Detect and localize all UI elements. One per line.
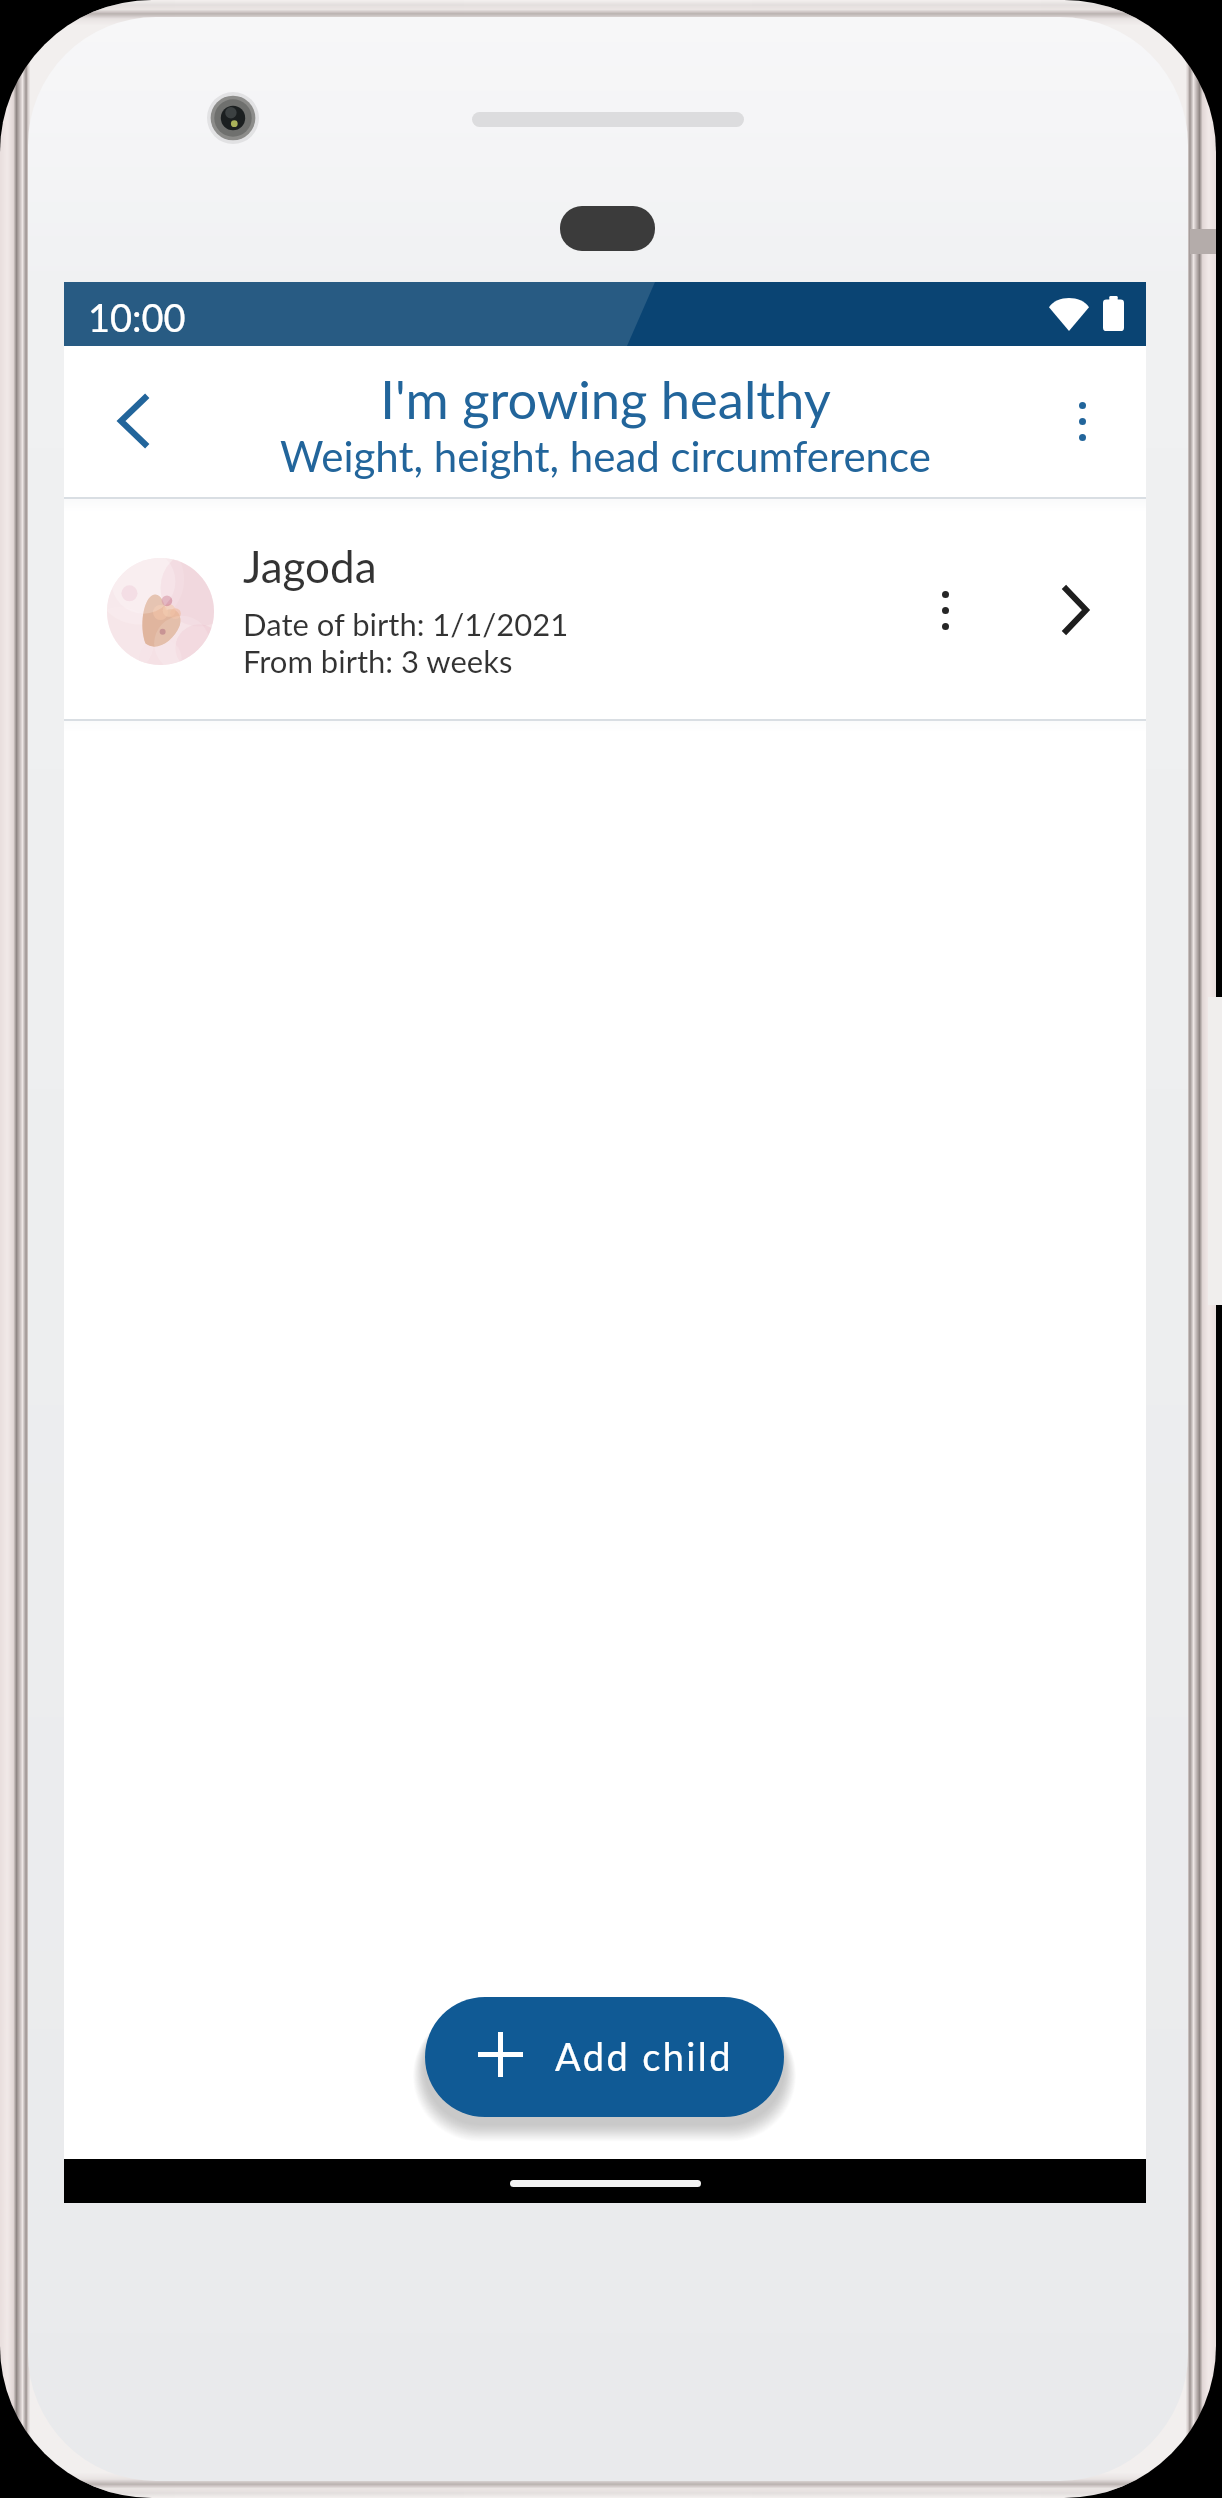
staticText: 10:00 [88, 294, 186, 340]
staticText: From birth: 3 weeks [243, 642, 513, 679]
button[interactable]: Jagoda [64, 499, 1146, 720]
button[interactable]: Open Jagoda [1020, 554, 1132, 666]
button[interactable]: More options [1027, 366, 1137, 476]
button[interactable]: Back [78, 366, 188, 476]
staticText: Jagoda [243, 540, 377, 593]
staticText: Add child [555, 2033, 733, 2079]
button[interactable]: Add child [425, 1997, 784, 2117]
staticText: Date of birth: 1/1/2021 [243, 605, 569, 642]
button[interactable]: Child options [890, 555, 1000, 665]
staticText: I'm growing healthy [380, 367, 831, 430]
staticText: Weight, height, head circumference [280, 431, 931, 481]
